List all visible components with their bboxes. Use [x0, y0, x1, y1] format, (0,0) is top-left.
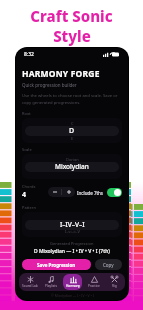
- staticText: Use the wheels to choose root and scale.…: [22, 93, 122, 105]
- button[interactable]: Harmony: [63, 274, 82, 290]
- staticText: Root: [22, 111, 31, 116]
- staticText: Pattern: [22, 205, 36, 210]
- other: Include 7ths toggle: [107, 188, 122, 197]
- staticText: Harmony: [66, 284, 80, 288]
- button[interactable]: Dorian: [22, 154, 122, 179]
- button[interactable]: Sound Lab: [20, 274, 40, 290]
- staticText: E: [71, 136, 74, 141]
- staticText: Scale: [22, 147, 32, 152]
- button[interactable]: Save Progression: [22, 259, 91, 270]
- staticText: I–IV–V–I: [60, 220, 85, 229]
- staticText: 8:32: [24, 51, 34, 58]
- staticText: Playlists: [45, 284, 58, 288]
- staticText: Dorian: [66, 157, 79, 162]
- staticText: Rig: [112, 284, 117, 288]
- button[interactable]: Practice: [84, 274, 103, 290]
- staticText: Practice: [88, 284, 100, 288]
- button[interactable]: Decrease chords: [48, 187, 61, 197]
- staticText: C: [71, 121, 74, 126]
- button[interactable]: Increase chords: [62, 187, 75, 197]
- staticText: Generated Progression: [50, 241, 94, 246]
- staticText: 4: [22, 190, 27, 200]
- staticText: Mixolydian: [55, 162, 89, 171]
- staticText: Sound Lab: [22, 284, 38, 288]
- staticText: HARMONY FORGE: [22, 68, 100, 80]
- button[interactable]: Playlists: [42, 274, 61, 290]
- staticText: Save Progression: [37, 262, 76, 268]
- staticText: I–vi–ii–V: [65, 229, 80, 234]
- staticText: D Mixolydian — I • IV • V • I (7th): [34, 248, 110, 255]
- staticText: Quick progression builder: [22, 82, 77, 88]
- staticText: Copy: [103, 262, 114, 268]
- button[interactable]: Include 7ths: [77, 188, 122, 197]
- button[interactable]: Copy: [95, 259, 122, 270]
- staticText: Style: [53, 26, 91, 46]
- staticText: © Mixolydian — I • IV • V • I: [51, 293, 94, 298]
- staticText: Craft Sonic: [30, 6, 113, 26]
- button[interactable]: I–IV–V–I: [22, 212, 122, 237]
- button[interactable]: Rig: [105, 274, 124, 290]
- staticText: Chords: [22, 184, 36, 189]
- button[interactable]: C: [22, 118, 122, 143]
- staticText: Include 7ths: [77, 190, 104, 196]
- staticText: D: [69, 126, 75, 136]
